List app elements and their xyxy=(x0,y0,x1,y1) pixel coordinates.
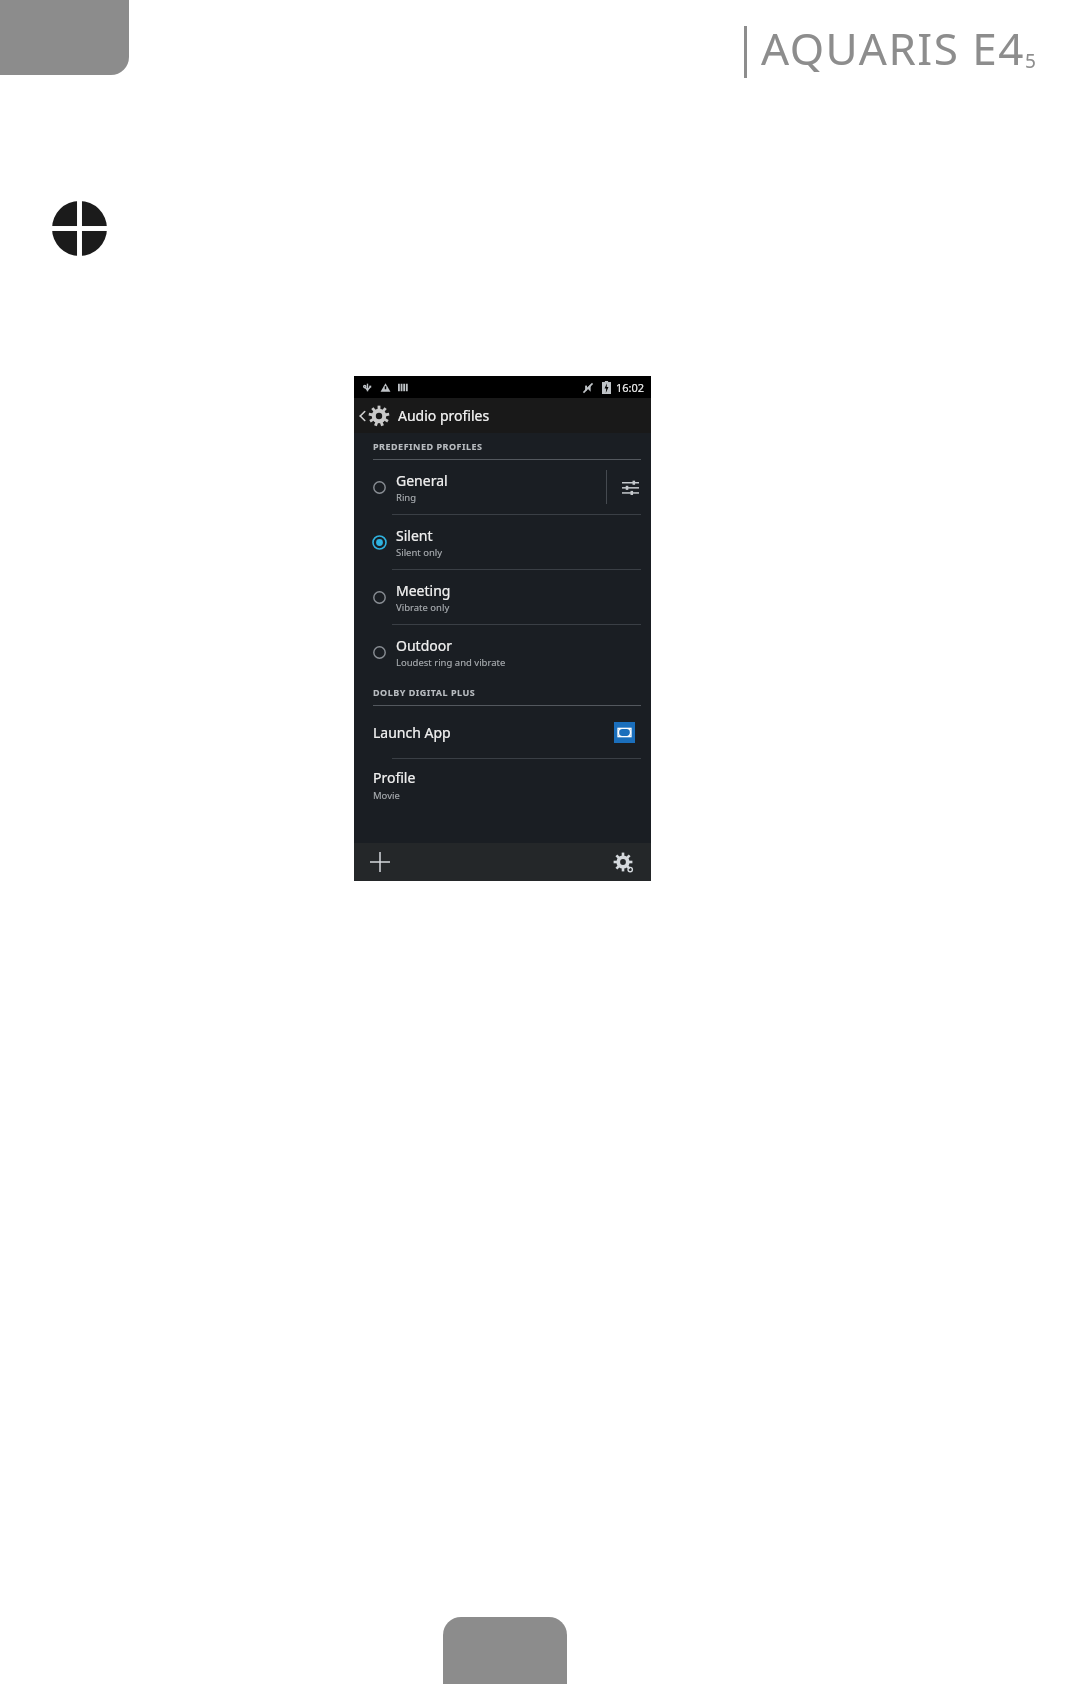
staticText: Ring xyxy=(396,491,417,504)
button[interactable]: Back xyxy=(354,398,651,433)
staticText: Silent xyxy=(396,526,433,545)
button[interactable]: General xyxy=(354,460,651,514)
button[interactable]: Profile settings xyxy=(619,476,641,498)
staticText: DOLBY DIGITAL PLUS xyxy=(373,686,476,698)
button[interactable]: Silent xyxy=(354,515,651,569)
button[interactable]: Launch App xyxy=(354,706,651,758)
staticText: Silent only xyxy=(396,546,443,559)
staticText: Meeting xyxy=(396,581,451,600)
button[interactable]: Settings xyxy=(595,843,651,881)
button[interactable]: Meeting xyxy=(354,570,651,624)
staticText: Audio profiles xyxy=(398,406,490,425)
staticText: Vibrate only xyxy=(396,601,450,614)
staticText: AQUARIS E4 xyxy=(761,18,1025,78)
staticText: 5 xyxy=(1025,48,1036,74)
staticText: General xyxy=(396,471,448,490)
staticText: Loudest ring and vibrate xyxy=(396,656,506,669)
staticText: 16:02 xyxy=(616,380,645,395)
staticText: Movie xyxy=(373,789,400,802)
staticText: Launch App xyxy=(373,723,614,742)
button[interactable]: Add profile xyxy=(354,843,595,881)
button[interactable]: Outdoor xyxy=(354,625,651,679)
staticText: PREDEFINED PROFILES xyxy=(373,440,483,452)
other: Back xyxy=(358,408,367,424)
staticText: Profile xyxy=(373,768,416,787)
button[interactable]: Profile xyxy=(354,759,651,811)
staticText: Outdoor xyxy=(396,636,452,655)
